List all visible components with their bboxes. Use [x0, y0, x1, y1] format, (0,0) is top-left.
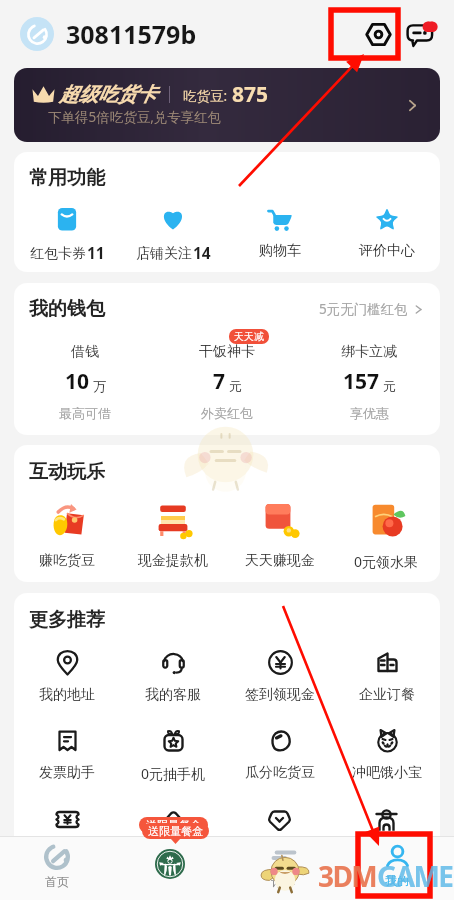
- button[interactable]: 红包卡券: [14, 207, 120, 263]
- button[interactable]: 评价中心: [333, 207, 440, 260]
- button[interactable]: Messages: [400, 12, 444, 56]
- staticText: 11: [87, 242, 105, 263]
- staticText: 更多推荐: [29, 608, 105, 632]
- staticText: 我的钱包: [29, 297, 105, 321]
- staticText: 5元无门槛红包: [319, 300, 408, 318]
- button[interactable]: 企业订餐: [333, 650, 440, 704]
- staticText: 冲吧饿小宝: [352, 764, 422, 782]
- button[interactable]: 瓜分吃货豆: [226, 728, 333, 782]
- staticText: 干饭神卡: [199, 343, 255, 361]
- staticText: 现金提款机: [138, 552, 208, 570]
- staticText: 外卖红包: [201, 405, 253, 421]
- staticText: 常用功能: [29, 166, 105, 190]
- staticText: 10: [65, 367, 90, 396]
- staticText: 最高可借: [59, 405, 111, 421]
- button[interactable]: 5元无门槛红包: [319, 300, 424, 318]
- button[interactable]: 赚吃货豆: [14, 500, 120, 570]
- staticText: 14: [193, 242, 211, 263]
- button[interactable]: 首页: [0, 837, 113, 889]
- staticText: 天天减: [234, 330, 264, 343]
- button[interactable]: [14, 807, 120, 843]
- button[interactable]: 冲吧饿小宝: [333, 728, 440, 782]
- staticText: 30811579b: [66, 17, 197, 51]
- staticText: 发票助手: [39, 764, 95, 782]
- staticText: 7: [213, 367, 226, 396]
- staticText: 超级吃货卡: [59, 82, 157, 107]
- staticText: 3DM: [318, 857, 377, 895]
- staticText: 购物车: [259, 242, 301, 260]
- staticText: 吃货豆:: [183, 87, 228, 105]
- staticText: 0元抽手机: [141, 764, 206, 783]
- button[interactable]: 超级吃货卡: [14, 68, 440, 142]
- button[interactable]: 签到领现金: [226, 650, 333, 704]
- staticText: 签到领现金: [245, 686, 315, 704]
- staticText: 店铺关注: [136, 245, 192, 263]
- button[interactable]: 购物车: [226, 207, 333, 260]
- button[interactable]: 0元抽手机: [120, 728, 226, 783]
- staticText: 评价中心: [359, 242, 415, 260]
- button[interactable]: Profile: [20, 17, 54, 51]
- staticText: 送限量餐盒: [148, 824, 203, 838]
- staticText: 157: [343, 367, 380, 396]
- staticText: 赚吃货豆: [39, 552, 95, 570]
- staticText: 0元领水果: [354, 552, 419, 571]
- button[interactable]: [333, 807, 440, 843]
- button[interactable]: [226, 807, 333, 843]
- button[interactable]: 借钱: [14, 343, 156, 421]
- button[interactable]: 我的: [340, 837, 454, 888]
- staticText: 享优惠: [350, 405, 389, 421]
- staticText: 企业订餐: [359, 686, 415, 704]
- staticText: 元: [229, 378, 242, 394]
- staticText: 红包卡券: [30, 245, 86, 263]
- button[interactable]: 订单: [226, 837, 340, 889]
- staticText: 我的客服: [145, 686, 201, 704]
- staticText: 瓜分吃货豆: [245, 764, 315, 782]
- button[interactable]: 0元领水果: [333, 500, 440, 571]
- button[interactable]: 送限量餐盒: [120, 807, 226, 843]
- button[interactable]: Starbucks: [113, 837, 226, 867]
- button[interactable]: 干饭神卡: [156, 343, 298, 421]
- staticText: 875: [232, 80, 269, 109]
- staticText: 互动玩乐: [29, 460, 105, 484]
- button[interactable]: 店铺关注: [120, 207, 226, 263]
- button[interactable]: 天天赚现金: [226, 500, 333, 570]
- button[interactable]: 发票助手: [14, 728, 120, 782]
- staticText: 绑卡立减: [341, 343, 397, 361]
- staticText: 订单: [271, 874, 295, 889]
- button[interactable]: 我的地址: [14, 650, 120, 704]
- staticText: 下单得5倍吃货豆,兑专享红包: [48, 108, 222, 126]
- staticText: 首页: [45, 874, 69, 889]
- staticText: GAME: [377, 857, 453, 895]
- staticText: 元: [383, 378, 396, 394]
- staticText: 万: [93, 378, 106, 394]
- staticText: 我的地址: [39, 686, 95, 704]
- staticText: 我的: [385, 873, 409, 888]
- staticText: 借钱: [71, 343, 99, 361]
- button[interactable]: 我的客服: [120, 650, 226, 704]
- staticText: 送限量餐盒: [146, 818, 201, 832]
- button[interactable]: 绑卡立减: [298, 343, 440, 421]
- button[interactable]: Settings: [356, 12, 400, 56]
- staticText: 天天赚现金: [245, 552, 315, 570]
- button[interactable]: 现金提款机: [120, 500, 226, 570]
